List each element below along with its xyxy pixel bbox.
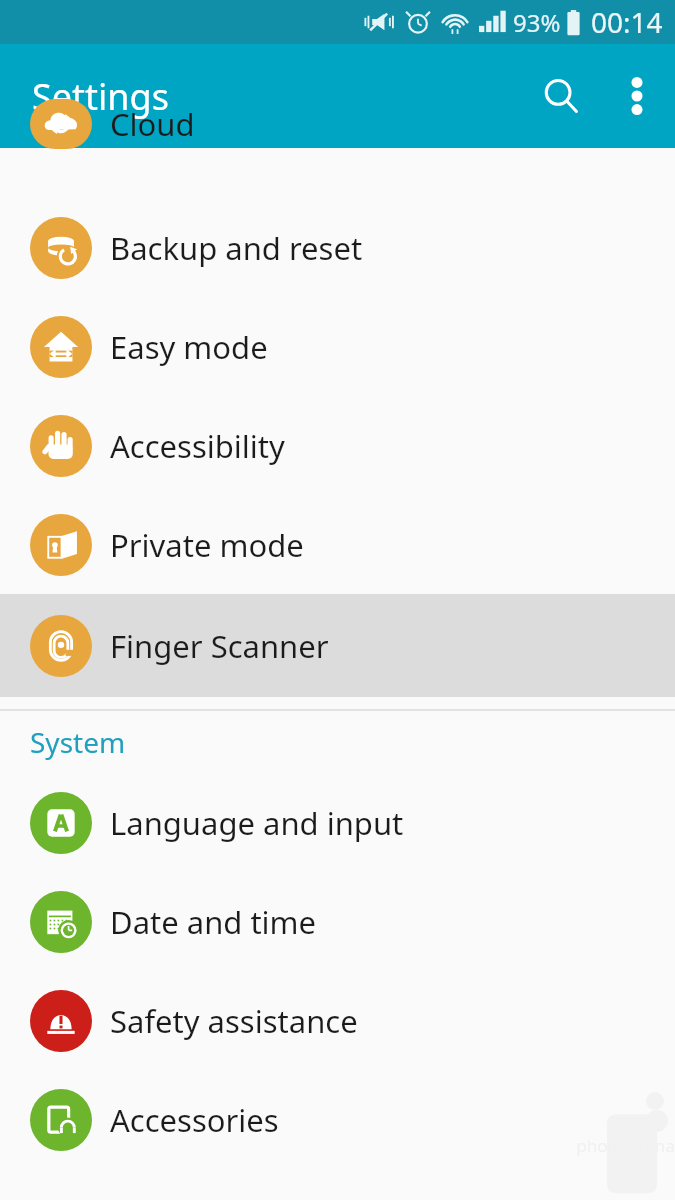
staticText: Accessibility xyxy=(110,425,285,467)
button[interactable]: Easy mode xyxy=(0,297,675,396)
button[interactable]: Accessibility xyxy=(0,396,675,495)
button[interactable]: Finger Scanner xyxy=(0,594,675,697)
button[interactable]: Date and time xyxy=(0,872,675,971)
button[interactable]: Accessories xyxy=(0,1070,675,1169)
staticText: Backup and reset xyxy=(110,227,363,269)
staticText: Easy mode xyxy=(110,326,268,368)
staticText: 93% xyxy=(513,6,561,39)
staticText: Settings xyxy=(32,72,169,121)
staticText: phoneArena xyxy=(576,1134,675,1157)
staticText: Private mode xyxy=(110,524,304,566)
staticText: Finger Scanner xyxy=(110,625,329,667)
staticText: System xyxy=(30,723,126,761)
staticText: Cloud xyxy=(110,103,195,145)
button[interactable]: Cloud xyxy=(0,99,675,149)
button[interactable]: Private mode xyxy=(0,495,675,594)
button[interactable]: More options xyxy=(599,58,675,134)
button[interactable]: Safety assistance xyxy=(0,971,675,1070)
button[interactable]: Search xyxy=(523,58,599,134)
staticText: 00:14 xyxy=(591,3,663,41)
button[interactable]: Language and input xyxy=(0,773,675,872)
staticText: Language and input xyxy=(110,802,404,844)
staticText: Accessories xyxy=(110,1099,279,1141)
button[interactable]: Backup and reset xyxy=(0,198,675,297)
staticText: Date and time xyxy=(110,901,317,943)
staticText: Safety assistance xyxy=(110,1000,358,1042)
